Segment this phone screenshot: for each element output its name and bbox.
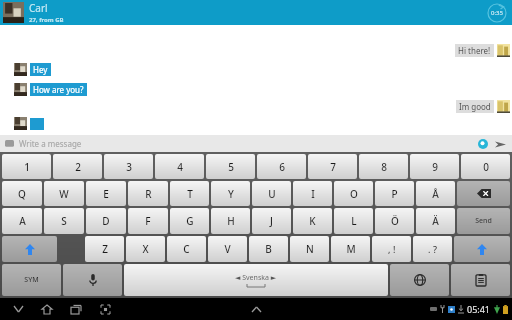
button[interactable]: Write a message [19, 138, 476, 149]
staticText: 8 [381, 160, 387, 174]
staticText: X [142, 242, 149, 256]
button[interactable]: E [86, 181, 126, 206]
staticText: Ö [391, 214, 399, 228]
button[interactable]: Emoji [5, 139, 14, 148]
staticText: I [311, 187, 315, 201]
staticText: 3 [126, 160, 132, 174]
staticText: Ä [432, 214, 439, 228]
button[interactable]: I [293, 181, 332, 206]
button[interactable]: S [44, 208, 84, 234]
staticText: H [227, 214, 235, 228]
button[interactable]: . [413, 236, 452, 262]
staticText: ? [433, 243, 438, 255]
staticText: Carl [29, 1, 48, 15]
button[interactable]: R [128, 181, 168, 206]
staticText: Im good [459, 101, 491, 112]
button[interactable]: Hi there! [455, 44, 510, 57]
button[interactable]: 8 [359, 154, 408, 179]
button[interactable]: Expand [247, 300, 265, 318]
button[interactable]: Im good [456, 100, 510, 113]
button[interactable]: K [293, 208, 332, 234]
button[interactable]: V [208, 236, 247, 262]
button[interactable]: Screenshot [97, 301, 113, 317]
button[interactable]: Shift [454, 236, 510, 262]
button[interactable]: X [126, 236, 165, 262]
button[interactable]: Hide keyboard [10, 301, 26, 317]
button[interactable]: Send [457, 208, 510, 234]
button[interactable]: Hey [14, 63, 51, 76]
button[interactable]: Recent apps [68, 301, 84, 317]
button[interactable]: Z [85, 236, 124, 262]
staticText: , [388, 243, 391, 255]
staticText: 1 [24, 160, 30, 174]
button[interactable]: L [334, 208, 373, 234]
button[interactable]: P [375, 181, 414, 206]
button[interactable]: T [170, 181, 209, 206]
button[interactable]: W [44, 181, 84, 206]
button[interactable]: C [167, 236, 206, 262]
staticText: Hi there! [458, 45, 491, 56]
button[interactable]: J [252, 208, 291, 234]
staticText: ! [393, 243, 396, 255]
button[interactable]: 6 [257, 154, 306, 179]
button[interactable]: Å [416, 181, 455, 206]
button[interactable]: A [2, 208, 42, 234]
staticText: 27, from GB [29, 16, 64, 24]
button[interactable]: Carl [0, 0, 512, 25]
button[interactable]: G [170, 208, 209, 234]
staticText: Z [102, 242, 108, 256]
staticText: Send [475, 216, 492, 226]
button[interactable]: , [372, 236, 411, 262]
button[interactable]: 4 [155, 154, 204, 179]
button[interactable]: 1 [2, 154, 51, 179]
button[interactable]: Send [493, 137, 507, 151]
button[interactable]: Backspace [457, 181, 510, 206]
button[interactable]: 7 [308, 154, 357, 179]
staticText: K [309, 214, 316, 228]
button[interactable]: H [211, 208, 250, 234]
button[interactable]: O [334, 181, 373, 206]
staticText: B [265, 242, 272, 256]
staticText: 05:41 [467, 303, 491, 315]
button[interactable]: N [290, 236, 329, 262]
button[interactable]: B [249, 236, 288, 262]
button[interactable]: Shift [2, 236, 57, 262]
button[interactable]: Ö [375, 208, 414, 234]
button[interactable]: Timer 0:35 [486, 2, 508, 24]
button[interactable]: F [128, 208, 168, 234]
button[interactable]: 5 [206, 154, 255, 179]
staticText: 9 [432, 160, 438, 174]
button[interactable]: Attach [476, 137, 489, 150]
staticText: E [103, 187, 109, 201]
button[interactable]: D [86, 208, 126, 234]
button[interactable]: How are you? [14, 83, 87, 96]
button[interactable]: ◄ Svenska ► [124, 264, 388, 296]
staticText: P [391, 187, 398, 201]
staticText: ◄ Svenska ► [235, 273, 277, 283]
staticText: U [268, 187, 276, 201]
button[interactable]: Voice input [63, 264, 122, 296]
button[interactable]: 2 [53, 154, 102, 179]
button[interactable]: 9 [410, 154, 459, 179]
button[interactable]: M [331, 236, 370, 262]
staticText: 4 [177, 160, 183, 174]
staticText: Å [432, 187, 439, 201]
staticText: C [183, 242, 190, 256]
button[interactable]: U [252, 181, 291, 206]
button[interactable]: Q [2, 181, 42, 206]
staticText: Write a message [19, 138, 82, 149]
button[interactable]: 0 [461, 154, 510, 179]
button[interactable]: SYM [2, 264, 61, 296]
button[interactable] [14, 117, 44, 130]
button[interactable]: Y [211, 181, 250, 206]
button[interactable]: Home [39, 301, 55, 317]
staticText: G [186, 214, 194, 228]
staticText: W [59, 187, 69, 201]
button[interactable]: Clipboard [451, 264, 510, 296]
staticText: Y [228, 187, 234, 201]
button[interactable]: 3 [104, 154, 153, 179]
staticText: V [224, 242, 231, 256]
button[interactable]: Ä [416, 208, 455, 234]
staticText: N [306, 242, 314, 256]
button[interactable]: Change language [390, 264, 449, 296]
